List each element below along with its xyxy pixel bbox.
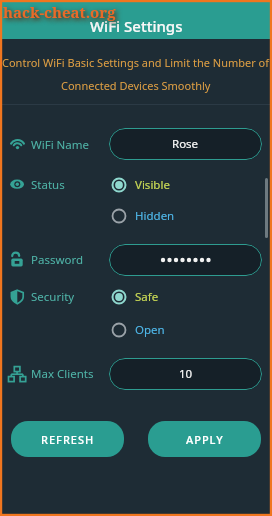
button[interactable]: Hidden [111, 205, 221, 227]
staticText: Rose [172, 136, 199, 152]
button[interactable]: REFRESH [11, 421, 124, 457]
staticText: WiFi Settings [90, 16, 183, 36]
button[interactable]: Open [111, 319, 221, 341]
button[interactable]: Visible [111, 174, 221, 196]
staticText: Connected Devices Smoothly [61, 78, 211, 93]
staticText: Visible [135, 177, 170, 193]
staticText: Max Clients [31, 366, 94, 382]
staticText: Hidden [135, 208, 175, 224]
button[interactable]: WiFi Settings [0, 0, 272, 39]
staticText: Open [135, 322, 165, 338]
button[interactable] [109, 244, 262, 276]
staticText: APPLY [186, 432, 224, 447]
staticText: Safe [135, 289, 159, 305]
button[interactable]: APPLY [148, 421, 261, 457]
staticText: Password [31, 252, 84, 268]
staticText: Control WiFi Basic Settings and Limit th… [2, 55, 270, 70]
staticText: WiFi Name [31, 137, 90, 153]
staticText: hack-cheat.org [3, 2, 116, 22]
button[interactable]: Rose [109, 128, 262, 160]
staticText: Status [31, 177, 65, 193]
staticText: Security [31, 289, 75, 305]
button[interactable]: Safe [111, 286, 221, 308]
staticText: REFRESH [41, 432, 95, 447]
button[interactable]: 10 [109, 358, 262, 390]
staticText: 10 [179, 366, 193, 382]
